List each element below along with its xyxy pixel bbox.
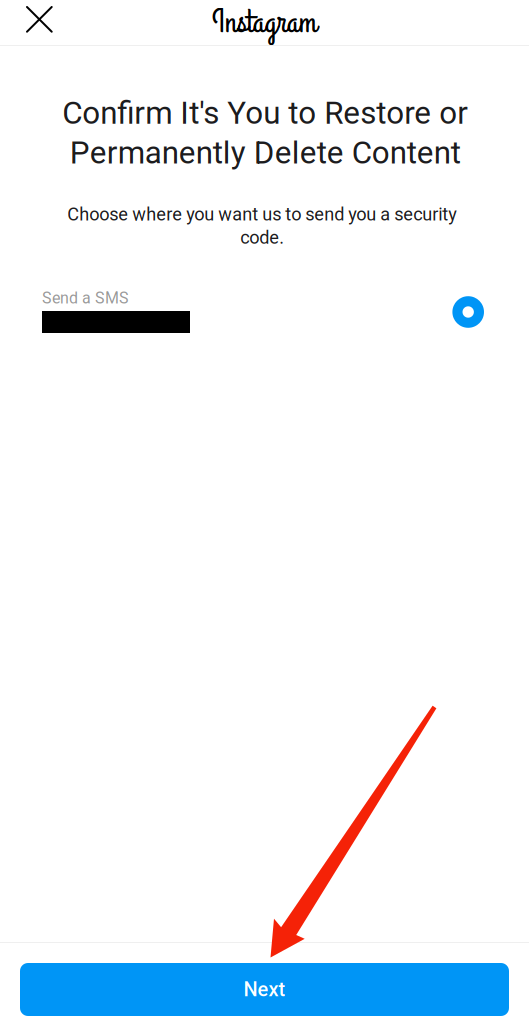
- button[interactable]: Send a SMS: [0, 287, 529, 337]
- staticText: Instagram: [212, 0, 317, 45]
- button[interactable]: Close: [0, 0, 78, 45]
- staticText: Send a SMS: [42, 289, 129, 307]
- button[interactable]: Next: [20, 963, 509, 1016]
- staticText: Confirm It's You to Restore or Permanent…: [62, 95, 468, 171]
- staticText: Next: [243, 978, 285, 1001]
- staticText: Choose where you want us to send you a s…: [67, 204, 457, 248]
